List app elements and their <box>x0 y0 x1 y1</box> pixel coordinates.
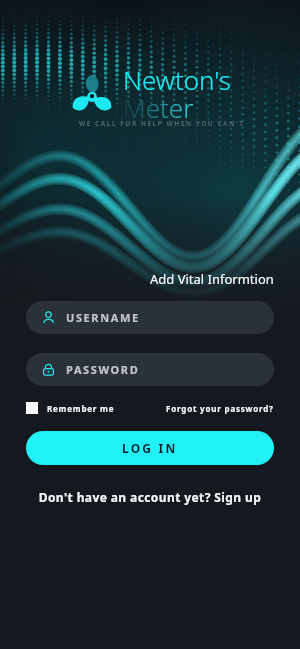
staticText: PASSWORD <box>66 362 140 377</box>
button[interactable]: LOG IN <box>26 431 274 465</box>
staticText: Add Vital Informtion <box>150 270 274 288</box>
button[interactable]: Username <box>26 301 274 334</box>
staticText: USERNAME <box>66 310 140 325</box>
staticText: Remember me <box>47 403 115 414</box>
button[interactable]: Remember me <box>26 402 115 414</box>
staticText: Meter <box>123 90 194 125</box>
button[interactable]: Password <box>26 353 274 386</box>
other: Password <box>42 363 55 376</box>
button[interactable]: Forgot your password? <box>166 403 274 414</box>
staticText: Newton's <box>123 62 231 97</box>
button[interactable]: Don't have an account yet? Sign up <box>26 489 274 505</box>
staticText: LOG IN <box>122 440 178 456</box>
staticText: WE CALL FOR HELP WHEN YOU CAN'T <box>79 119 245 128</box>
other: Username <box>42 311 55 324</box>
